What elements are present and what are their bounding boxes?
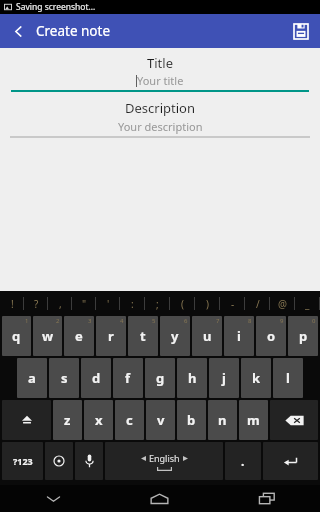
button[interactable]: n xyxy=(208,400,237,440)
button[interactable]: t xyxy=(128,316,158,356)
staticText: ?123 xyxy=(13,455,33,467)
staticText: t xyxy=(140,327,146,345)
staticText: i xyxy=(237,327,241,345)
staticText: a xyxy=(28,369,36,387)
button[interactable]: Home xyxy=(106,485,213,512)
staticText: @ xyxy=(278,297,287,311)
staticText: k xyxy=(252,369,261,387)
staticText: ' xyxy=(107,297,110,311)
button[interactable]: l xyxy=(273,358,303,398)
button[interactable]: b xyxy=(177,400,206,440)
staticText: j xyxy=(222,369,226,387)
button[interactable]: k xyxy=(241,358,271,398)
button[interactable]: i xyxy=(224,316,254,356)
button[interactable]: @ xyxy=(270,291,295,316)
button[interactable]: a xyxy=(17,358,47,398)
staticText: w xyxy=(42,327,54,345)
button[interactable]: ( xyxy=(170,291,195,316)
button[interactable]: Enter xyxy=(263,442,318,480)
staticText: 3 xyxy=(88,317,92,325)
staticText: b xyxy=(187,411,196,429)
button[interactable]: ) xyxy=(195,291,220,316)
button[interactable]: Your description xyxy=(0,119,320,134)
button[interactable]: e xyxy=(64,316,94,356)
button[interactable]: Backspace xyxy=(270,400,318,440)
staticText: , xyxy=(59,297,62,311)
staticText: ! xyxy=(11,297,14,311)
button[interactable]: - xyxy=(220,291,245,316)
button[interactable]: g xyxy=(145,358,175,398)
staticText: 0 xyxy=(312,317,316,325)
staticText: Your title xyxy=(137,73,184,88)
button[interactable]: f xyxy=(113,358,143,398)
button[interactable]: Space xyxy=(105,442,223,480)
button[interactable]: z xyxy=(53,400,82,440)
button[interactable]: p xyxy=(288,316,318,356)
button[interactable]: Save xyxy=(282,14,320,48)
staticText: ) xyxy=(206,297,209,311)
button[interactable]: , xyxy=(48,291,72,316)
button[interactable]: : xyxy=(120,291,145,316)
staticText: s xyxy=(61,369,68,387)
staticText: Description xyxy=(0,99,320,117)
button[interactable]: o xyxy=(256,316,286,356)
button[interactable]: Shift xyxy=(2,400,51,440)
staticText: Title xyxy=(0,54,320,72)
staticText: r xyxy=(108,327,114,345)
button[interactable]: _ xyxy=(295,291,320,316)
staticText: ( xyxy=(181,297,184,311)
button[interactable]: " xyxy=(72,291,96,316)
staticText: v xyxy=(157,411,165,429)
staticText: Create note xyxy=(36,22,111,40)
button[interactable]: / xyxy=(245,291,270,316)
button[interactable]: ?123 xyxy=(2,442,43,480)
staticText: English xyxy=(149,452,180,464)
staticText: . xyxy=(241,453,245,469)
button[interactable]: y xyxy=(160,316,190,356)
button[interactable]: v xyxy=(146,400,175,440)
staticText: Saving screenshot… xyxy=(16,1,96,13)
staticText: - xyxy=(231,297,235,311)
button[interactable]: w xyxy=(33,316,62,356)
button[interactable]: j xyxy=(209,358,239,398)
staticText: 4 xyxy=(120,317,124,325)
staticText: u xyxy=(203,327,212,345)
staticText: y xyxy=(171,327,179,345)
staticText: " xyxy=(82,297,87,311)
button[interactable]: r xyxy=(96,316,126,356)
button[interactable]: Recent apps xyxy=(213,485,320,512)
staticText: 8 xyxy=(248,317,252,325)
button[interactable]: Emoji xyxy=(45,442,73,480)
staticText: h xyxy=(188,369,197,387)
staticText: g xyxy=(156,369,165,387)
staticText: 6 xyxy=(184,317,188,325)
button[interactable]: Back xyxy=(0,485,106,512)
staticText: n xyxy=(218,411,227,429)
button[interactable]: ! xyxy=(0,291,24,316)
button[interactable]: . xyxy=(225,442,261,480)
button[interactable]: h xyxy=(177,358,207,398)
staticText: 2 xyxy=(56,317,60,325)
button[interactable]: c xyxy=(115,400,144,440)
button[interactable]: q xyxy=(2,316,31,356)
staticText: f xyxy=(125,369,131,387)
button[interactable]: Your title xyxy=(0,73,320,88)
button[interactable]: d xyxy=(81,358,111,398)
staticText: x xyxy=(95,411,103,429)
button[interactable]: x xyxy=(84,400,113,440)
staticText: z xyxy=(64,411,71,429)
staticText: o xyxy=(267,327,276,345)
button[interactable]: m xyxy=(239,400,268,440)
button[interactable]: ? xyxy=(24,291,48,316)
staticText: : xyxy=(131,297,134,311)
staticText: 9 xyxy=(280,317,284,325)
staticText: d xyxy=(92,369,101,387)
button[interactable]: Voice input xyxy=(75,442,103,480)
button[interactable]: u xyxy=(192,316,222,356)
staticText: 7 xyxy=(216,317,220,325)
button[interactable]: Back xyxy=(0,14,36,48)
button[interactable]: ; xyxy=(145,291,170,316)
button[interactable]: ' xyxy=(96,291,120,316)
button[interactable]: s xyxy=(49,358,79,398)
staticText: 1 xyxy=(25,317,29,325)
